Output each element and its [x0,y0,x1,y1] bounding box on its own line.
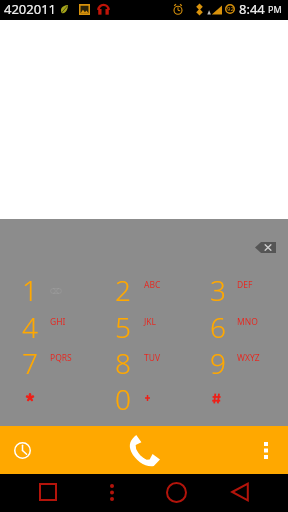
button[interactable]: Backspace [252,238,278,256]
button[interactable]: 2 [96,271,192,307]
button[interactable]: Back [220,474,260,512]
staticText: 8 [115,344,131,380]
staticText: JKL [144,316,157,328]
button[interactable]: Menu [94,474,130,512]
button[interactable]: More options [244,426,288,474]
button[interactable]: 4 [0,308,96,344]
button[interactable]: 0 [96,380,192,416]
staticText: TUV [144,352,161,364]
button[interactable]: 7 [0,344,96,380]
staticText: 3 [210,271,226,307]
button[interactable]: 8 [96,344,192,380]
button[interactable]: Call [111,426,177,474]
button[interactable]: 9 [192,344,288,380]
staticText: 6 [210,308,226,344]
staticText: ABC [144,279,161,291]
staticText: DEF [237,279,253,291]
button[interactable]: 3 [192,271,288,307]
staticText: PQRS [50,352,72,364]
staticText: 2 [115,271,131,307]
staticText: PM [268,3,282,15]
button[interactable]: 5 [96,308,192,344]
staticText: MNO [237,316,258,328]
staticText: 7 [22,344,38,380]
staticText: 4 [22,308,38,344]
staticText: 4202011 [4,0,57,18]
button[interactable]: 1 [0,271,96,307]
staticText: 92 [227,5,234,13]
button[interactable] [0,380,96,416]
staticText: GHI [50,316,66,328]
staticText: WXYZ [237,352,260,364]
staticText: 1 [22,271,38,307]
button[interactable]: 6 [192,308,288,344]
button[interactable] [192,380,288,416]
staticText: 8:44 [239,0,265,18]
button[interactable]: Home [156,474,196,512]
staticText: 0 [115,380,131,416]
button[interactable]: Call history [0,426,44,474]
staticText: 9 [210,344,226,380]
staticText: 5 [115,308,131,344]
button[interactable]: Recents [28,474,68,512]
